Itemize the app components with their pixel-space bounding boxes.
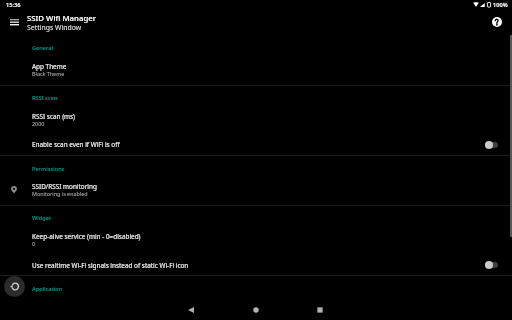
button[interactable]: Widget [32,214,52,222]
staticText: Permissions [32,165,65,173]
staticText: 2000 [32,120,45,127]
button[interactable]: Toggle setting [478,137,504,153]
staticText: SSID Wifi Manager [27,13,96,24]
staticText: RSSI scan [32,94,58,102]
staticText: Black Theme [32,70,65,77]
button[interactable]: Restore default settings [4,276,25,297]
button[interactable]: General [32,44,53,52]
button[interactable]: Permissions [32,165,65,173]
button[interactable]: Recent apps [309,299,331,320]
staticText: Application [32,285,63,293]
button[interactable]: Help [489,14,506,31]
button[interactable]: Home [245,299,267,320]
staticText: Monitoring is enabled [32,190,88,197]
staticText: Use realtime Wi-Fi signals instead of st… [32,261,189,270]
staticText: App Theme [32,62,67,71]
staticText: 15:36 [6,1,21,9]
button[interactable]: Toggle setting [478,257,504,273]
staticText: 0 [32,240,36,247]
staticText: Settings Window [27,23,82,32]
staticText: SSID/RSSI monitoring [32,182,97,191]
staticText: Widget [32,214,52,222]
staticText: 100% [493,1,508,9]
staticText: Enable scan even if WiFi is off [32,140,120,149]
button[interactable]: RSSI scan [32,94,58,102]
button[interactable]: Back [180,299,202,320]
staticText: Keep-alive service (min - 0=disabled) [32,232,141,241]
staticText: General [32,44,53,52]
staticText: RSSI scan (ms) [32,112,76,121]
button[interactable]: Open navigation drawer [5,13,23,31]
